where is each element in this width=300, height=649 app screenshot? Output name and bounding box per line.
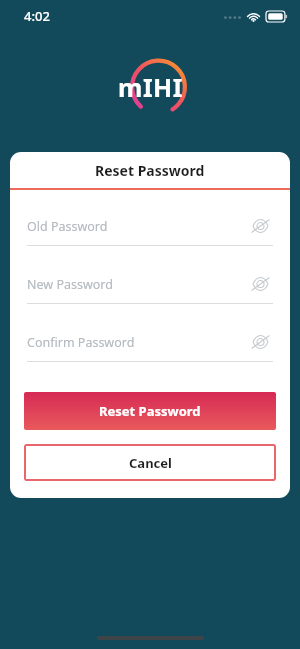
staticText: 4:02: [24, 7, 50, 25]
button[interactable]: Show Old Password: [247, 213, 273, 239]
button[interactable]: Show Confirm Password: [247, 329, 273, 355]
staticText: Old Password: [27, 218, 108, 235]
button[interactable]: Cancel: [24, 444, 276, 481]
staticText: mIHI: [118, 70, 183, 104]
button[interactable]: Show New Password: [247, 271, 273, 297]
staticText: Reset Password: [99, 402, 201, 420]
staticText: Reset Password: [95, 161, 205, 180]
staticText: New Password: [27, 276, 113, 293]
staticText: Confirm Password: [27, 334, 135, 351]
button[interactable]: Reset Password: [24, 392, 276, 430]
staticText: Cancel: [129, 454, 172, 472]
